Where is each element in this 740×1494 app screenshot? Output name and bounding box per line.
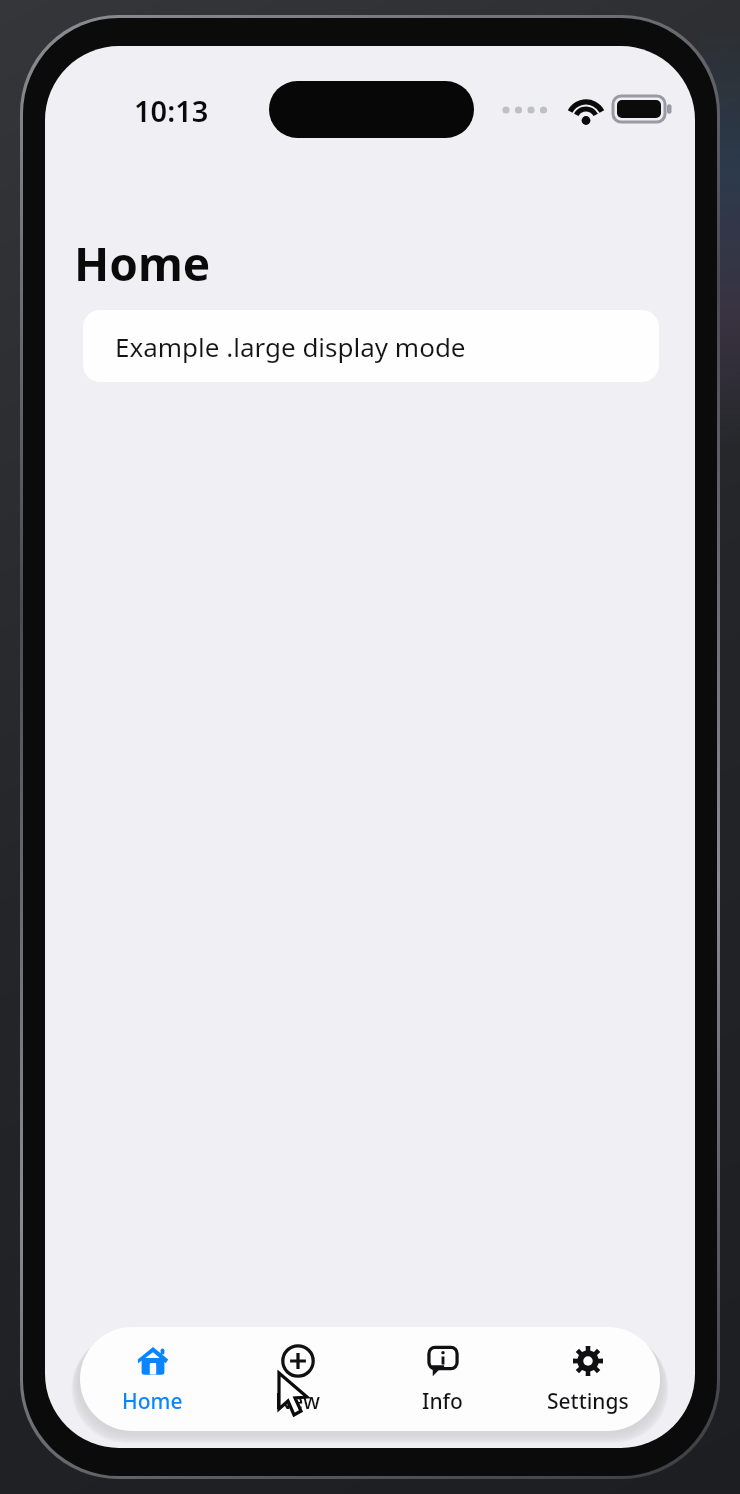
button[interactable]: Home: [80, 1327, 225, 1431]
staticText: Home: [122, 1387, 183, 1416]
button[interactable]: Info: [370, 1327, 515, 1431]
button[interactable]: Settings: [515, 1327, 660, 1431]
staticText: Info: [422, 1387, 463, 1416]
staticText: Home: [74, 232, 211, 295]
button[interactable]: New: [225, 1327, 370, 1431]
staticText: New: [275, 1387, 320, 1416]
button[interactable]: Example .large display mode: [83, 310, 659, 382]
staticText: Example .large display mode: [115, 329, 466, 364]
staticText: Settings: [547, 1387, 629, 1416]
staticText: 10:13: [134, 91, 209, 130]
